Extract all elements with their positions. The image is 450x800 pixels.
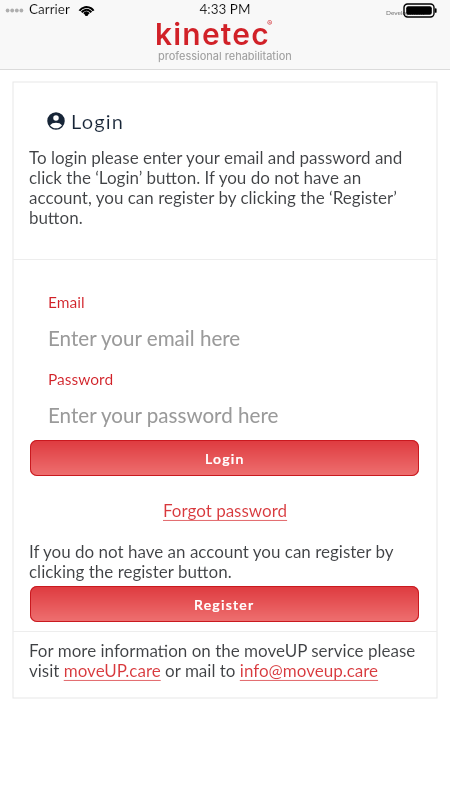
button[interactable]: Forgot password — [163, 500, 288, 520]
staticText: Development — [386, 9, 425, 17]
staticText: Login — [205, 450, 245, 467]
button[interactable]: Login — [30, 440, 419, 476]
staticText: Password — [48, 370, 114, 389]
staticText: 4:33 PM — [0, 1, 450, 17]
staticText: If you do not have an account you can re… — [29, 541, 425, 581]
staticText: Login — [71, 109, 125, 133]
button[interactable]: Enter your password here — [48, 403, 279, 428]
staticText: ® — [267, 18, 273, 28]
staticText: For more information on the moveUP servi… — [29, 640, 425, 680]
button[interactable]: Register — [30, 586, 419, 622]
staticText: Email — [48, 293, 85, 312]
staticText: kinetec — [155, 16, 270, 52]
staticText: To login please enter your email and pas… — [29, 147, 425, 227]
staticText: Carrier — [29, 1, 70, 17]
staticText: Register — [194, 596, 255, 613]
other: Account — [47, 112, 65, 130]
staticText: professional rehabilitation — [158, 49, 292, 62]
button[interactable]: Account — [47, 109, 125, 133]
button[interactable]: Enter your email here — [48, 326, 241, 351]
